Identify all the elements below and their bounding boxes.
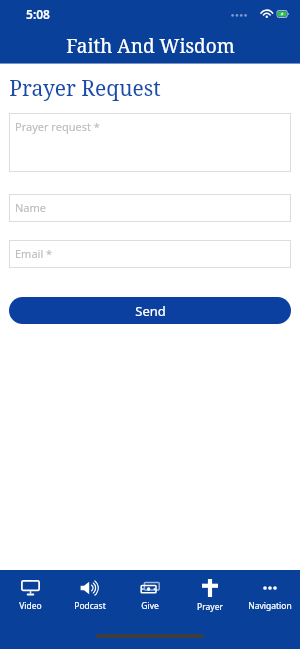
button[interactable]: Email * [9,240,291,268]
staticText: Video [19,600,42,612]
other: Navigation [260,580,280,596]
other: Podcast [80,580,100,596]
staticText: Email * [15,246,53,261]
staticText: Give [141,600,159,612]
staticText: Prayer [197,601,223,613]
staticText: Send [135,302,166,320]
staticText: Navigation [248,600,292,612]
button[interactable]: Prayer [180,570,240,622]
staticText: Podcast [74,600,106,612]
staticText: 5:08 [26,6,50,22]
button[interactable]: Name [9,194,291,222]
button[interactable]: Video [0,570,60,622]
other: Video [21,580,40,596]
button[interactable]: Navigation [240,570,300,622]
staticText: Faith And Wisdom [66,33,235,59]
staticText: Prayer request * [15,119,100,134]
button[interactable]: Send [9,297,291,324]
button[interactable]: Give [120,570,180,622]
other: Give [140,580,160,596]
button[interactable]: Podcast [60,570,120,622]
other: Prayer [202,579,218,597]
staticText: Name [15,200,47,215]
button[interactable]: Prayer request * [9,113,291,172]
staticText: Prayer Request [9,74,161,103]
